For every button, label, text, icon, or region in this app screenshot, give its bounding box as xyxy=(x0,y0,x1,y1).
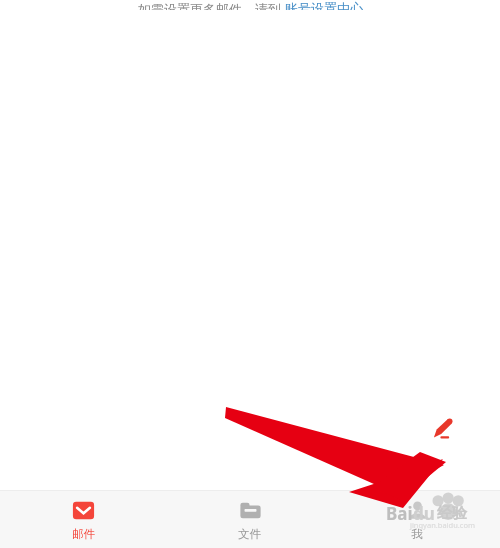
staticText: jingyan.baidu.com xyxy=(410,520,475,530)
button[interactable]: 邮件 xyxy=(0,491,166,548)
staticText: du xyxy=(413,502,435,525)
staticText: 经验 xyxy=(437,504,467,523)
button[interactable]: Compose xyxy=(411,398,472,459)
staticText: 账号设置中心 xyxy=(285,0,363,10)
staticText: 文件 xyxy=(238,527,261,541)
button[interactable]: 我 xyxy=(333,491,500,548)
staticText: Bai xyxy=(386,502,413,525)
staticText: 邮件 xyxy=(72,527,95,541)
button[interactable]: 文件 xyxy=(166,491,333,548)
staticText: 如需设置更多邮件，请到 xyxy=(138,0,285,10)
staticText: 我 xyxy=(411,527,423,541)
